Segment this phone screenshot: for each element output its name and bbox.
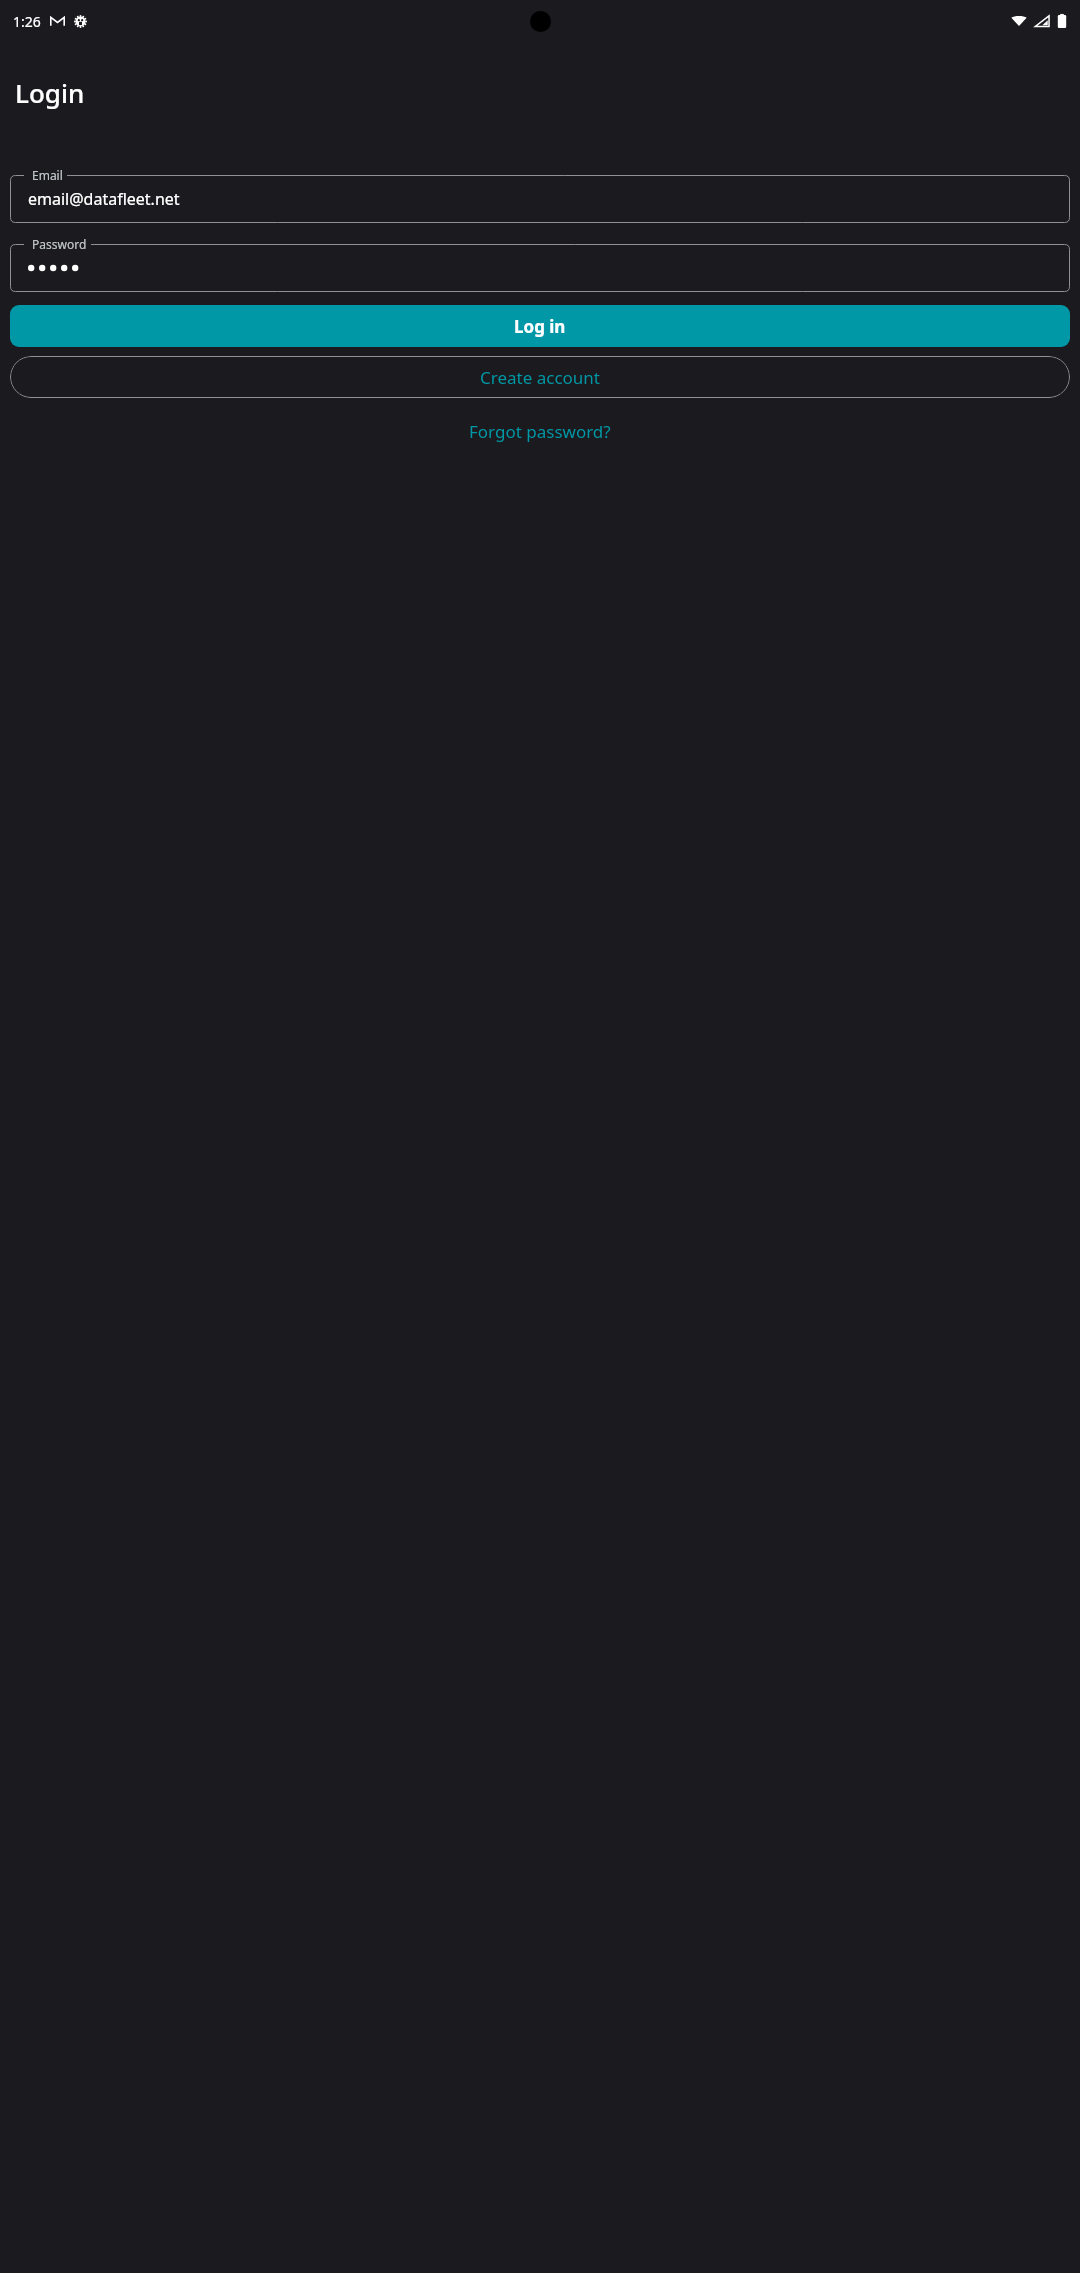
staticText: Email [32, 167, 63, 183]
button[interactable]: Log in [10, 305, 1070, 347]
button[interactable]: Forgot password? [0, 411, 1080, 451]
button[interactable]: Create account [10, 356, 1070, 398]
staticText: Log in [514, 315, 566, 338]
button[interactable]: email@datafleet.net [10, 175, 1070, 223]
staticText: email@datafleet.net [28, 188, 180, 210]
staticText: Create account [480, 366, 600, 389]
staticText: 1:26 [13, 12, 41, 31]
staticText: Password [32, 236, 87, 252]
button[interactable] [10, 244, 1070, 292]
staticText: Login [15, 75, 85, 110]
staticText: Forgot password? [469, 420, 611, 443]
